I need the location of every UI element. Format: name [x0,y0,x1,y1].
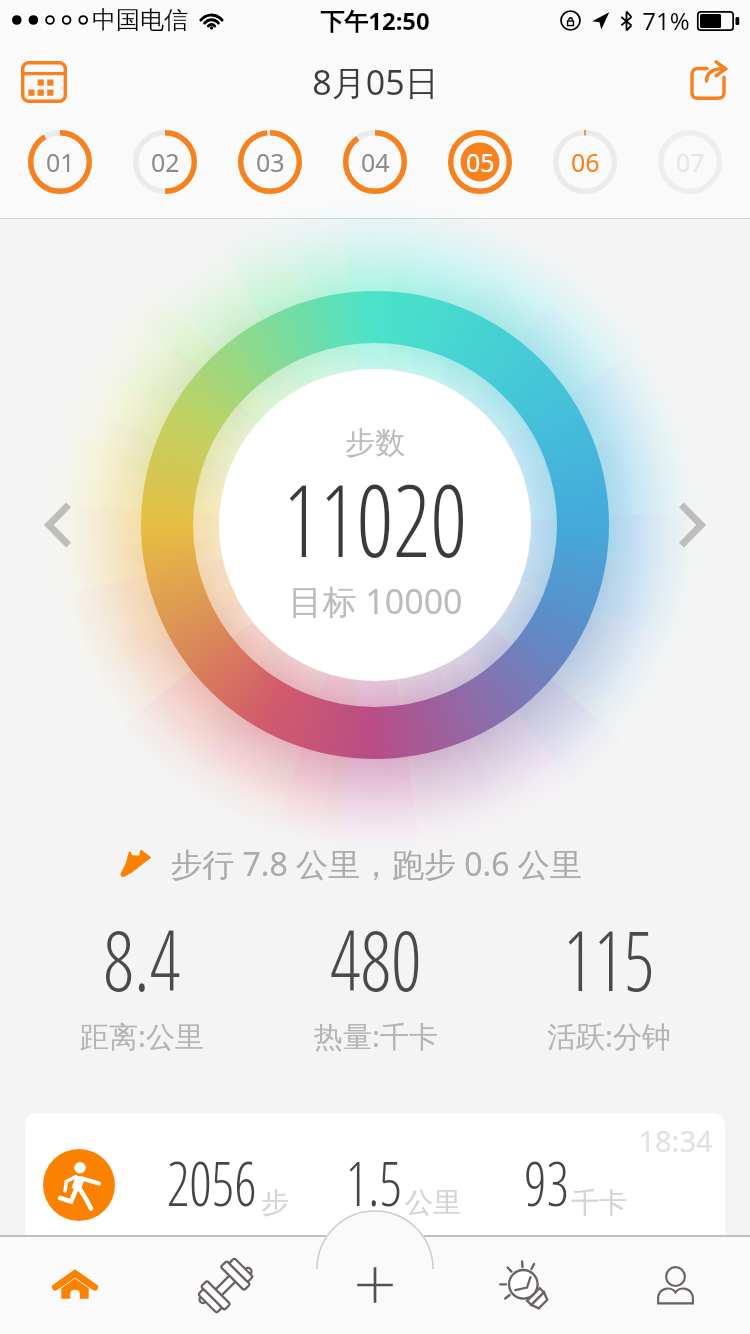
button[interactable]: 01 [15,119,105,205]
button[interactable]: Calendar [14,52,74,112]
button[interactable]: 06 [540,119,630,205]
button[interactable]: Next day [660,492,726,558]
staticText: 06 [571,145,600,179]
button[interactable]: 03 [225,119,315,205]
staticText: 01 [46,145,75,179]
button[interactable]: Profile [600,1236,750,1334]
staticText: 中国电信 [92,5,188,35]
staticText: 03 [256,145,285,179]
staticText: 04 [361,145,390,179]
staticText: 距离:公里 [80,1016,204,1056]
button[interactable]: Workouts [150,1236,300,1334]
staticText: 1.5 [345,1141,402,1224]
staticText: 步行 7.8 公里，跑步 0.6 公里 [170,842,582,886]
staticText: 93 [524,1141,569,1224]
staticText: 步 [261,1185,289,1220]
staticText: 目标 10000 [288,578,463,624]
button[interactable]: Add [300,1236,450,1334]
staticText: 下午12:50 [320,4,430,37]
staticText: 115 [563,902,655,1015]
staticText: 71% [642,4,690,37]
staticText: 步数 [345,424,405,462]
staticText: 活跃:分钟 [547,1016,671,1056]
staticText: 02 [151,145,180,179]
staticText: 千卡 [571,1185,627,1220]
button[interactable]: 18:34 [25,1113,725,1236]
staticText: 8.4 [103,902,181,1015]
staticText: 热量:千卡 [314,1016,438,1056]
staticText: 07 [676,145,705,179]
button[interactable]: Share [678,52,738,112]
staticText: 公里 [405,1185,461,1220]
button[interactable]: 04 [330,119,420,205]
staticText: 2056 [167,1141,257,1224]
staticText: 05 [466,145,495,179]
button[interactable]: Home [0,1236,150,1334]
staticText: 18:34 [638,1121,713,1160]
button[interactable]: 02 [120,119,210,205]
button[interactable]: Discover [450,1236,600,1334]
staticText: 8月05日 [312,59,439,105]
button[interactable]: 05 [435,119,525,205]
button[interactable]: 07 [645,119,735,205]
button[interactable]: Previous day [24,492,90,558]
staticText: 480 [330,902,422,1015]
staticText: 11020 [283,450,467,586]
